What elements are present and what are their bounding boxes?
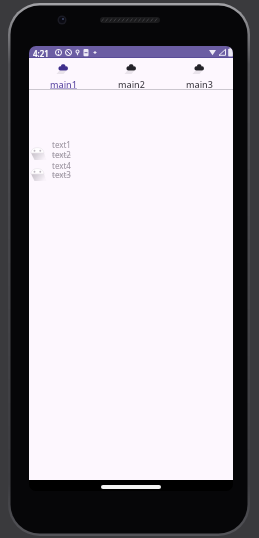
button[interactable]: text1 [29, 139, 233, 160]
staticText: text3 [52, 169, 71, 180]
staticText: main3 [186, 78, 213, 90]
button[interactable]: main3 [165, 58, 233, 89]
staticText: 4:21 [33, 48, 49, 59]
button[interactable]: main2 [97, 58, 165, 89]
staticText: text1 [52, 139, 71, 150]
staticText: text2 [52, 149, 71, 160]
button[interactable]: main1 [29, 58, 97, 89]
staticText: main1 [50, 78, 77, 90]
button[interactable]: text4 [29, 160, 233, 181]
staticText: main2 [118, 78, 145, 90]
staticText: text4 [52, 160, 71, 171]
